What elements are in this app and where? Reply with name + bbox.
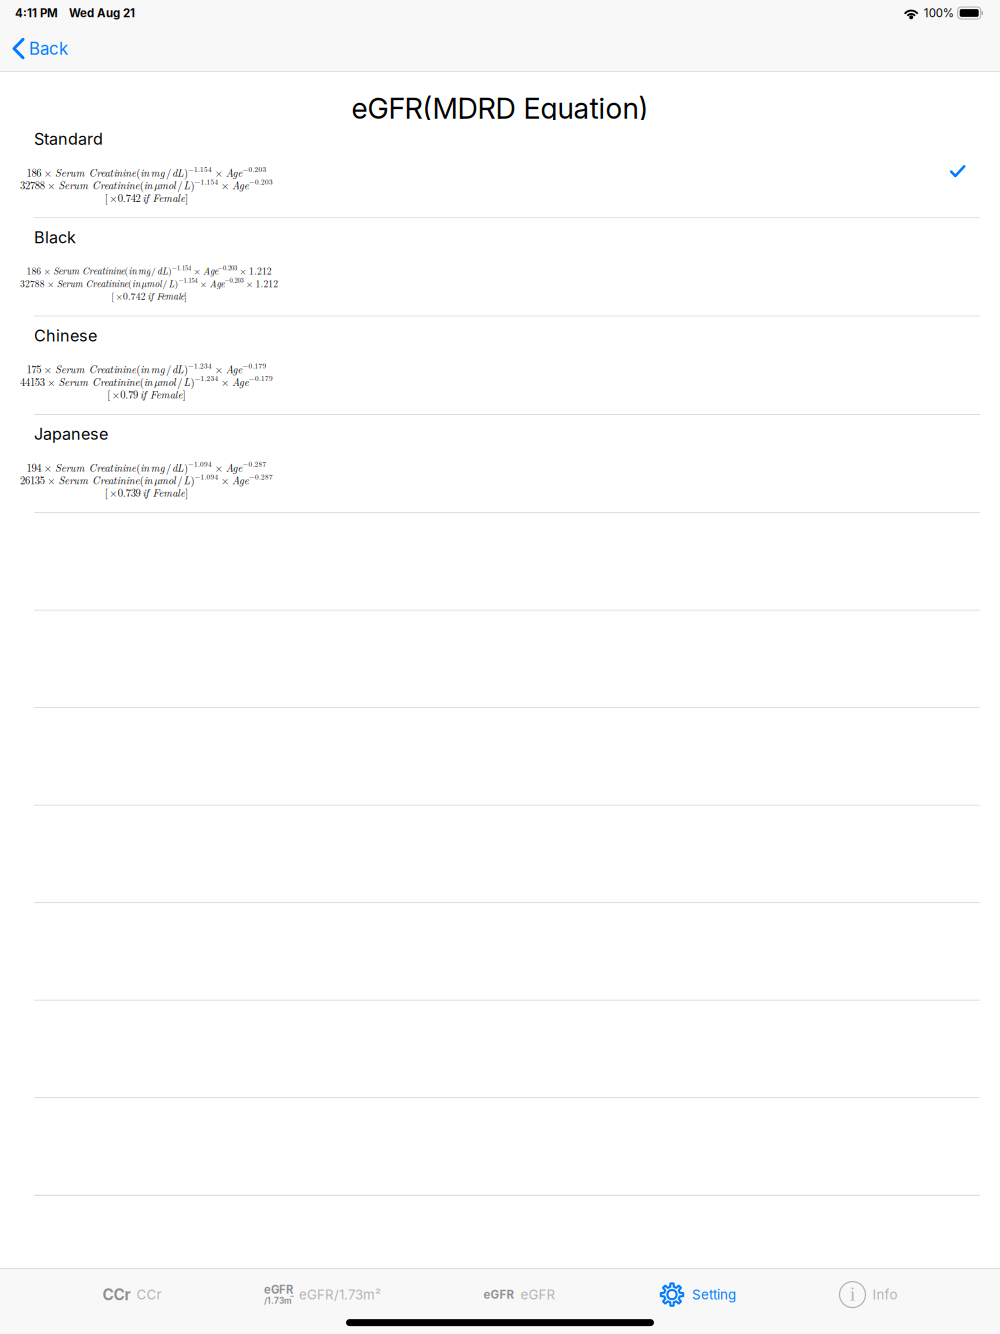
staticText: Age	[232, 472, 249, 487]
staticText: eGFR(MDRD Equation)	[351, 91, 648, 126]
staticText: ]	[184, 289, 187, 302]
staticText: Age	[226, 460, 242, 475]
staticText: Back	[29, 39, 68, 59]
button[interactable]: Chinese	[0, 317, 1000, 414]
staticText: Serum Creatinine	[58, 472, 140, 487]
staticText: dL	[157, 264, 168, 277]
staticText: −0.287	[242, 459, 266, 469]
staticText: mg	[151, 460, 165, 475]
staticText: ×	[193, 264, 200, 277]
staticText: ×	[47, 177, 55, 192]
staticText: ×	[109, 485, 117, 500]
staticText: ×	[239, 264, 246, 277]
staticText: −1.154	[172, 263, 191, 272]
staticText: −1.154	[178, 275, 197, 285]
staticText: in	[144, 374, 153, 389]
staticText: i	[850, 1284, 855, 1304]
staticText: ]	[185, 190, 188, 205]
staticText: 194	[26, 460, 41, 475]
staticText: −0.179	[242, 360, 266, 371]
button[interactable]: Setting	[658, 1274, 736, 1315]
staticText: ×	[221, 374, 229, 389]
staticText: Age	[203, 264, 218, 277]
button[interactable]: i	[838, 1274, 897, 1315]
staticText: Setting	[692, 1286, 736, 1303]
staticText: µmol	[154, 472, 176, 487]
staticText: L	[168, 276, 174, 290]
staticText: Serum Creatinine	[55, 165, 136, 180]
staticText: Serum Creatinine	[53, 264, 125, 277]
staticText: eGFR	[520, 1286, 555, 1303]
staticText: µmol	[154, 177, 176, 192]
staticText: −1.094	[188, 459, 212, 469]
staticText: )	[190, 472, 194, 487]
staticText: (	[136, 460, 140, 475]
staticText: )	[184, 361, 188, 376]
staticText: )	[190, 374, 194, 389]
staticText: (	[125, 264, 129, 277]
staticText: (	[128, 276, 132, 290]
staticText: ×	[43, 264, 50, 277]
staticText: Chinese	[34, 326, 97, 345]
staticText: dL	[172, 460, 184, 475]
staticText: −1.154	[194, 176, 218, 187]
staticText: dL	[172, 361, 184, 376]
staticText: Standard	[34, 129, 103, 149]
staticText: in	[140, 460, 149, 475]
button[interactable]: Black	[0, 218, 1000, 316]
staticText: if Female	[147, 289, 184, 303]
staticText: (	[140, 177, 144, 192]
staticText: /	[166, 460, 171, 475]
staticText: −0.203	[218, 263, 237, 272]
staticText: ×	[47, 374, 55, 389]
staticText: Serum Creatinine	[57, 276, 128, 290]
staticText: −0.203	[249, 176, 273, 187]
staticText: 1.212	[249, 264, 272, 277]
button[interactable]: Standard	[0, 120, 1000, 217]
staticText: in	[132, 276, 140, 290]
staticText: /	[151, 264, 156, 277]
staticText: 0.79	[120, 387, 138, 402]
staticText: /	[177, 374, 182, 389]
staticText: in	[144, 177, 153, 192]
staticText: ×	[44, 460, 52, 475]
staticText: Serum Creatinine	[55, 361, 136, 376]
staticText: ×	[215, 165, 223, 180]
button[interactable]: Japanese	[0, 415, 1000, 512]
button[interactable]: eGFR	[483, 1274, 555, 1315]
staticText: /1.73m̅	[264, 1295, 292, 1306]
staticText: ×	[200, 276, 207, 290]
staticText: µmol	[141, 276, 161, 290]
staticText: ×	[47, 472, 55, 487]
staticText: in	[140, 361, 149, 376]
staticText: [	[105, 485, 108, 500]
staticText: CCr	[102, 1285, 130, 1304]
staticText: 186	[26, 165, 41, 180]
staticText: L	[183, 177, 190, 192]
staticText: /	[166, 361, 171, 376]
staticText: Serum Creatinine	[58, 374, 140, 389]
staticText: 186	[26, 264, 41, 277]
staticText: −0.287	[249, 471, 273, 481]
staticText: µmol	[154, 374, 176, 389]
staticText: Age	[226, 361, 242, 376]
button[interactable]: Back	[0, 27, 82, 71]
staticText: Age	[232, 177, 249, 192]
staticText: in	[129, 264, 137, 277]
staticText: if Female	[140, 387, 183, 402]
button[interactable]: CCr	[102, 1274, 161, 1315]
button[interactable]: eGFR	[264, 1274, 381, 1315]
staticText: ×	[246, 276, 253, 290]
staticText: if Female	[143, 190, 185, 205]
staticText: (	[136, 361, 140, 376]
staticText: 4:11 PM	[15, 6, 58, 20]
staticText: −1.154	[188, 164, 212, 174]
staticText: L	[183, 374, 190, 389]
staticText: 32788	[20, 177, 45, 192]
staticText: [	[111, 289, 114, 302]
staticText: Japanese	[34, 424, 108, 444]
staticText: ×	[44, 165, 52, 180]
staticText: in	[140, 165, 149, 180]
staticText: ]	[183, 387, 186, 402]
staticText: /	[177, 177, 182, 192]
